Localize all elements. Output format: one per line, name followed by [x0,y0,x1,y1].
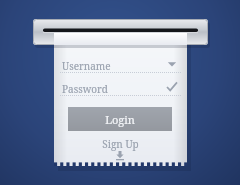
button[interactable]: Login [68,107,172,131]
button[interactable]: Username field [56,56,184,74]
button[interactable]: Sign Up [96,137,144,151]
staticText: Username [62,59,111,73]
button[interactable]: Password field [56,79,184,97]
button[interactable]: Show more [112,150,128,164]
staticText: Login [105,112,135,127]
staticText: Password [62,82,108,96]
staticText: Sign Up [102,137,139,151]
